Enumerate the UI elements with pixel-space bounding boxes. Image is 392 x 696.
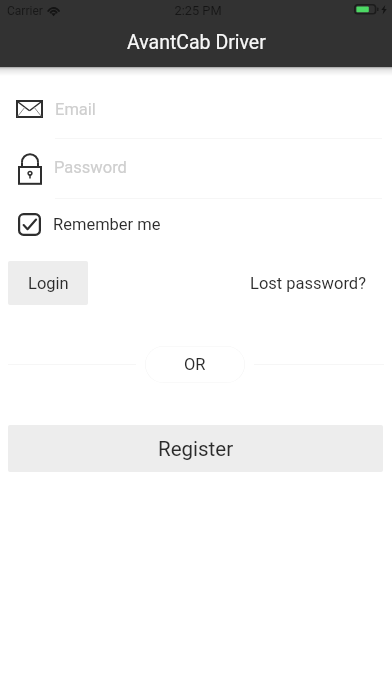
button[interactable]: Lost password?	[240, 263, 376, 303]
button[interactable]: Login	[8, 261, 88, 305]
staticText: Register	[158, 437, 234, 461]
other: Remember me checkbox	[18, 213, 41, 236]
staticText: Carrier	[7, 4, 43, 18]
staticText: Lost password?	[250, 274, 366, 293]
button[interactable]: Remember me checkbox	[8, 208, 161, 240]
staticText: Remember me	[53, 215, 161, 234]
button[interactable]: Password	[0, 151, 392, 185]
staticText: OR	[184, 355, 206, 374]
button[interactable]: Email	[0, 92, 392, 126]
staticText: Email	[55, 100, 96, 119]
button[interactable]: Register	[8, 425, 383, 472]
staticText: 2:25 PM	[2, 3, 392, 18]
other: Email	[16, 100, 43, 118]
staticText: Password	[54, 158, 127, 177]
staticText: AvantCab Driver	[127, 31, 266, 54]
staticText: Login	[28, 274, 69, 293]
other: Password	[18, 151, 42, 183]
